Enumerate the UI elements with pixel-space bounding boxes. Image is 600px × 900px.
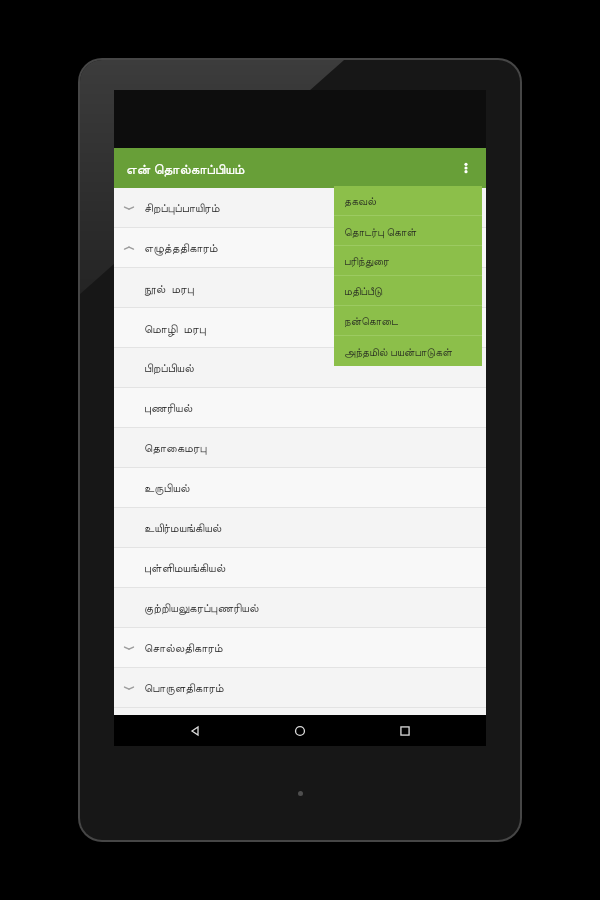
button[interactable]: நூல் மரபு <box>114 268 486 308</box>
button[interactable]: உயிர்மயங்கியல் <box>114 508 486 548</box>
button[interactable]: மொழி மரபு <box>114 308 486 348</box>
staticText: மதிப்பீடு <box>344 286 383 297</box>
button[interactable]: More options <box>446 148 486 188</box>
staticText: தொடர்பு கொள் <box>344 224 417 239</box>
staticText: நன்கொடை <box>344 316 399 327</box>
button[interactable]: பொருளதிகாரம் <box>114 668 486 708</box>
button[interactable]: சிறப்புப்பாயிரம் <box>114 188 486 228</box>
staticText: பொருளதிகாரம் <box>144 682 224 694</box>
staticText: தொகைமரபு <box>144 442 207 454</box>
staticText: நூல் மரபு <box>144 280 194 296</box>
button[interactable]: Recent apps <box>381 715 429 746</box>
staticText: மொழி மரபு <box>144 320 206 336</box>
staticText: சிறப்புப்பாயிரம் <box>144 202 220 214</box>
staticText: குற்றியலுகரப்புணரியல் <box>144 602 259 614</box>
staticText: உருபியல் <box>144 482 190 494</box>
staticText: சொல்லதிகாரம் <box>144 642 223 654</box>
staticText: அந்தமில் பயன்பாடுகள் <box>344 344 452 359</box>
staticText: உயிர்மயங்கியல் <box>144 522 222 534</box>
staticText: பரிந்துரை <box>344 256 389 267</box>
staticText: பிறப்பியல் <box>144 362 194 374</box>
button[interactable]: மதிப்பீடு <box>334 276 482 306</box>
button[interactable]: தொகைமரபு <box>114 428 486 468</box>
staticText: என் தொல்காப்பியம் <box>126 159 245 178</box>
staticText: புள்ளிமயங்கியல் <box>144 562 226 574</box>
button[interactable]: புணரியல் <box>114 388 486 428</box>
button[interactable]: சொல்லதிகாரம் <box>114 628 486 668</box>
button[interactable]: குற்றியலுகரப்புணரியல் <box>114 588 486 628</box>
staticText: தகவல் <box>344 196 376 207</box>
button[interactable]: பரிந்துரை <box>334 246 482 276</box>
button[interactable]: புள்ளிமயங்கியல் <box>114 548 486 588</box>
button[interactable]: நன்கொடை <box>334 306 482 336</box>
staticText: புணரியல் <box>144 402 193 414</box>
button[interactable]: Back <box>171 715 219 746</box>
button[interactable]: அந்தமில் பயன்பாடுகள் <box>334 336 482 366</box>
button[interactable]: உருபியல் <box>114 468 486 508</box>
button[interactable]: எழுத்ததிகாரம் <box>114 228 486 268</box>
button[interactable]: Home <box>276 715 324 746</box>
staticText: எழுத்ததிகாரம் <box>144 242 218 254</box>
button[interactable]: தொடர்பு கொள் <box>334 216 482 246</box>
button[interactable]: தகவல் <box>334 186 482 216</box>
button[interactable]: பிறப்பியல் <box>114 348 486 388</box>
